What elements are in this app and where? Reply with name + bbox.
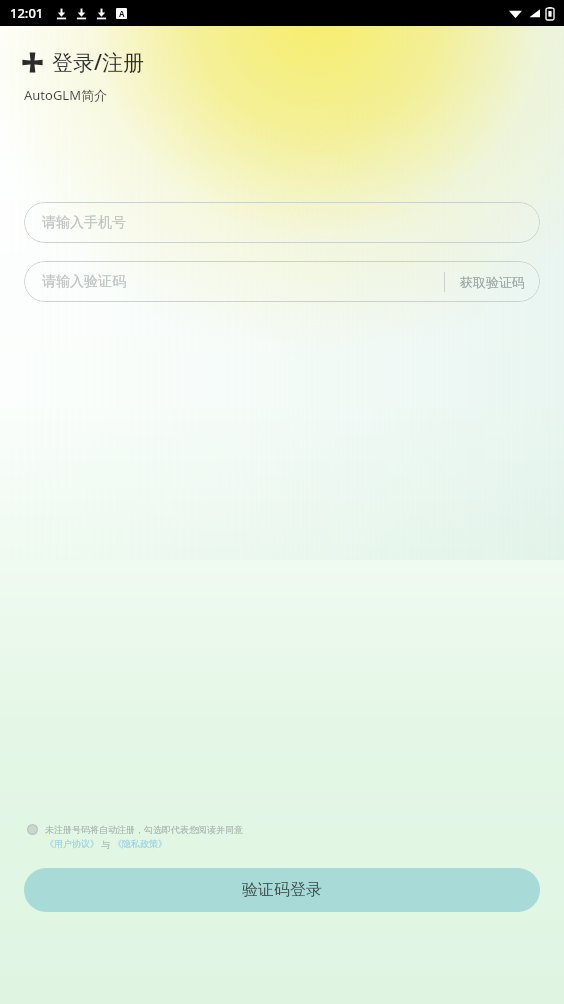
button[interactable]: 获取验证码: [445, 261, 540, 302]
button[interactable]: 验证码登录: [24, 868, 540, 912]
button[interactable]: AutoGLM简介: [24, 86, 107, 104]
staticText: A: [119, 8, 125, 19]
staticText: 验证码登录: [242, 880, 322, 900]
button[interactable]: 未注册号码将自动注册，勾选即代表您阅读并同意: [27, 824, 243, 850]
button[interactable]: 《用户协议》: [45, 838, 99, 849]
staticText: 登录/注册: [52, 48, 145, 77]
staticText: 12:01: [10, 4, 44, 22]
staticText: 请输入手机号: [42, 214, 126, 232]
staticText: 未注册号码将自动注册，勾选即代表您阅读并同意: [45, 824, 243, 835]
button[interactable]: 请输入验证码: [24, 261, 444, 302]
button[interactable]: 《隐私政策》: [113, 838, 167, 849]
staticText: 请输入验证码: [42, 273, 126, 291]
button[interactable]: 请输入手机号: [24, 202, 540, 243]
staticText: 获取验证码: [460, 274, 525, 290]
staticText: 与: [99, 838, 113, 850]
